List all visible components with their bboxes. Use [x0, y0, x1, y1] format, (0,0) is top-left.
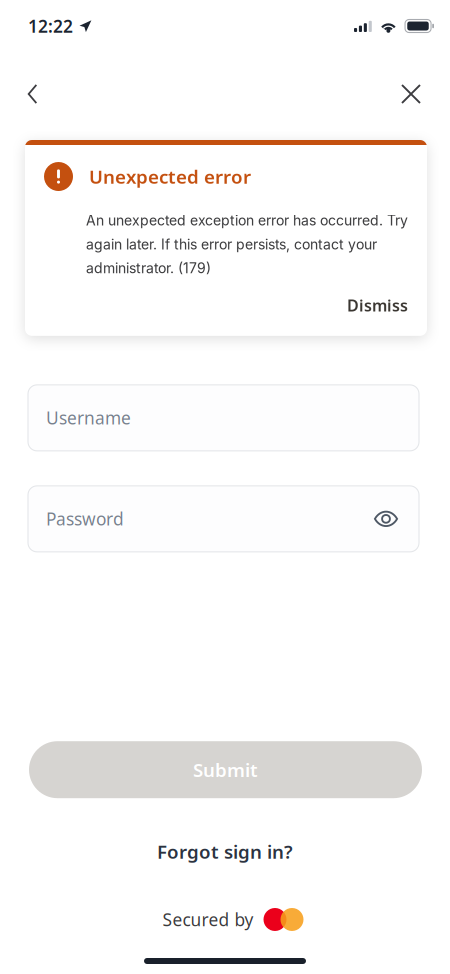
button[interactable]: Close [389, 72, 433, 116]
staticText: Forgot sign in? [157, 839, 293, 864]
staticText: Username [46, 406, 131, 429]
button[interactable]: Show password [366, 499, 406, 539]
staticText: Unexpected error [89, 164, 251, 189]
staticText: Password [46, 507, 124, 530]
button[interactable]: Forgot sign in? [147, 830, 303, 873]
button[interactable]: Submit [29, 741, 422, 798]
button[interactable]: Dismiss [347, 290, 408, 321]
staticText: Dismiss [347, 295, 408, 316]
button[interactable]: Back [10, 72, 54, 116]
staticText: 12:22 [28, 14, 73, 37]
staticText: An unexpected exception error has occurr… [86, 212, 408, 277]
staticText: Submit [193, 757, 258, 782]
staticText: Secured by [162, 908, 253, 931]
